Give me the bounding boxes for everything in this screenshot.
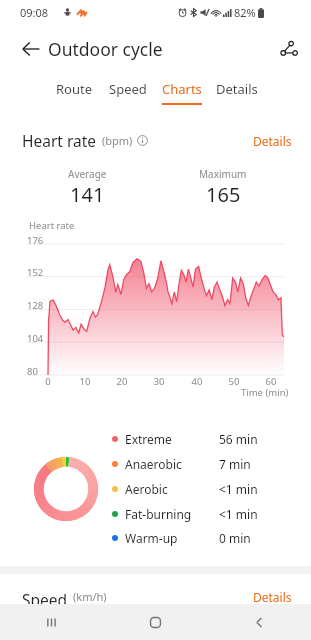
staticText: 50 <box>224 375 244 388</box>
staticText: Extreme <box>125 431 172 447</box>
staticText: Aerobic <box>125 481 168 497</box>
button[interactable]: Warm-up <box>112 526 251 550</box>
staticText: Route <box>56 80 93 98</box>
staticText: Details <box>253 589 292 604</box>
staticText: Fat-burning <box>125 506 192 522</box>
staticText: 141 <box>70 181 105 208</box>
staticText: Speed <box>109 80 147 98</box>
staticText: Heart rate <box>29 219 75 232</box>
staticText: (bpm) <box>102 133 133 148</box>
staticText: 104 <box>27 332 44 345</box>
staticText: 20 <box>112 375 132 388</box>
staticText: 80 <box>27 365 38 378</box>
staticText: 152 <box>27 266 44 279</box>
staticText: (km/h) <box>73 589 107 604</box>
staticText: 10 <box>75 375 95 388</box>
button[interactable]: Fat-burning <box>112 501 258 526</box>
staticText: <1 min <box>219 481 258 497</box>
button[interactable]: Home <box>103 604 207 640</box>
staticText: 165 <box>206 181 241 208</box>
staticText: <1 min <box>219 506 258 522</box>
staticText: 60 <box>261 375 281 388</box>
button[interactable]: Anaerobic <box>112 451 251 476</box>
button[interactable]: Details <box>253 133 292 149</box>
staticText: 40 <box>187 375 207 388</box>
button[interactable]: Share <box>267 27 311 71</box>
button[interactable]: Aerobic <box>112 476 258 501</box>
staticText: 128 <box>27 299 44 312</box>
staticText: 09:08 <box>20 5 49 20</box>
staticText: Details <box>253 133 292 149</box>
staticText: Speed <box>22 589 68 604</box>
staticText: 0 <box>38 375 58 388</box>
staticText: Average <box>68 167 107 181</box>
staticText: Warm-up <box>125 530 178 546</box>
staticText: Maximum <box>199 167 247 181</box>
staticText: 7 min <box>219 456 251 472</box>
staticText: Time (min) <box>241 386 289 399</box>
button[interactable]: Back <box>207 604 311 640</box>
staticText: 56 min <box>219 431 258 447</box>
button[interactable]: Recents <box>0 604 103 640</box>
staticText: 82% <box>234 5 256 20</box>
button[interactable]: Back <box>9 27 53 71</box>
staticText: 30 <box>149 375 169 388</box>
button[interactable]: Charts <box>155 72 209 105</box>
button[interactable]: Extreme <box>112 426 258 451</box>
button[interactable]: Details <box>253 589 292 604</box>
staticText: Charts <box>162 80 202 98</box>
staticText: Outdoor cycle <box>48 37 163 61</box>
staticText: 0 min <box>219 530 251 546</box>
button[interactable]: Route <box>47 72 101 105</box>
staticText: Details <box>216 80 258 98</box>
button[interactable]: Speed <box>101 72 155 105</box>
button[interactable]: Details <box>209 72 265 105</box>
staticText: Heart rate <box>22 130 97 151</box>
staticText: 176 <box>27 234 44 247</box>
staticText: Anaerobic <box>125 456 182 472</box>
